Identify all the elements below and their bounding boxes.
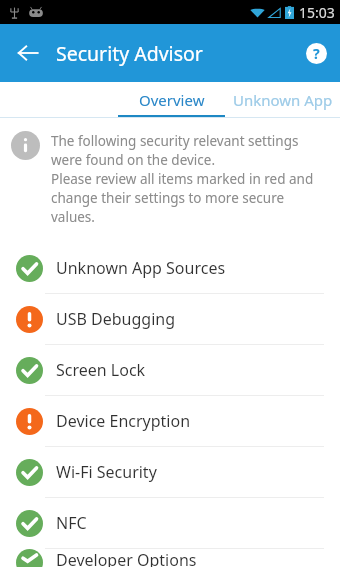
staticText: USB Debugging [56,308,176,330]
staticText: Developer Options [56,549,197,567]
button[interactable]: USB Debugging [0,294,340,344]
staticText: ? [313,44,320,63]
staticText: values. [51,208,95,226]
staticText: NFC [56,512,87,534]
button[interactable]: Help [292,24,340,82]
button[interactable]: Device Encryption [0,396,340,446]
button[interactable]: Screen Lock [0,345,340,395]
staticText: The following security relevant settings [51,132,299,150]
button[interactable]: NFC [0,498,340,548]
staticText: Overview [139,90,205,110]
staticText: were found on the device. [51,151,216,169]
staticText: Please review all items marked in red an… [51,170,314,188]
button[interactable]: Back [0,24,56,82]
staticText: Wi-Fi Security [56,461,157,483]
button[interactable]: Wi-Fi Security [0,447,340,497]
staticText: Security Advisor [56,40,203,67]
staticText: Screen Lock [56,359,146,381]
staticText: Device Encryption [56,410,191,432]
staticText: change their settings to more secure [51,189,285,207]
staticText: Unknown App Sources [233,90,340,110]
button[interactable]: Overview [118,82,225,118]
staticText: Unknown App Sources [56,257,226,279]
button[interactable]: Unknown App Sources [0,243,340,293]
button[interactable]: Developer Options [0,549,340,567]
button[interactable]: Unknown App Sources [225,82,340,118]
staticText: 15:03 [299,3,335,22]
